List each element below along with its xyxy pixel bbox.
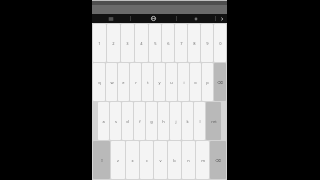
button[interactable]: j	[170, 102, 181, 140]
staticText: n	[187, 158, 190, 163]
button[interactable]: 8	[188, 24, 200, 62]
button[interactable]: Menu	[92, 14, 130, 23]
button[interactable]: z	[111, 141, 125, 179]
staticText: 5	[154, 41, 157, 46]
button[interactable]: a	[98, 102, 109, 140]
staticText: v	[159, 158, 162, 163]
button[interactable]: 3	[121, 24, 134, 62]
button[interactable]: t	[142, 63, 153, 101]
button[interactable]: k	[182, 102, 193, 140]
staticText: ret	[211, 119, 217, 124]
button[interactable]: h	[158, 102, 169, 140]
staticText: ⇧	[100, 158, 104, 163]
staticText: q	[98, 80, 101, 85]
staticText: u	[170, 80, 173, 85]
staticText: i	[183, 80, 185, 85]
staticText: l	[199, 119, 201, 124]
button[interactable]: 9	[201, 24, 213, 62]
staticText: r	[135, 80, 137, 85]
staticText: 6	[167, 41, 170, 46]
staticText: z	[117, 158, 119, 163]
button[interactable]: ⌫	[214, 63, 226, 101]
staticText: o	[194, 80, 197, 85]
staticText: d	[126, 119, 129, 124]
staticText: 8	[193, 41, 196, 46]
staticText: g	[150, 119, 153, 124]
button[interactable]: b	[168, 141, 181, 179]
staticText: h	[162, 119, 165, 124]
staticText: ⌫	[215, 158, 221, 163]
button[interactable]: o	[190, 63, 201, 101]
button[interactable]: 5	[149, 24, 161, 62]
staticText: f	[139, 119, 141, 124]
button[interactable]: w	[106, 63, 117, 101]
button[interactable]: Settings	[177, 14, 215, 23]
staticText: t	[147, 80, 149, 85]
staticText: j	[175, 119, 177, 124]
button[interactable]: x	[126, 141, 139, 179]
button[interactable]: y	[154, 63, 165, 101]
button[interactable]: 1	[93, 24, 106, 62]
button[interactable]: ret	[206, 102, 221, 140]
button[interactable]: Voice input	[131, 14, 176, 23]
button[interactable]: 4	[135, 24, 148, 62]
staticText: a	[102, 119, 105, 124]
staticText: x	[131, 158, 134, 163]
button[interactable]: m	[196, 141, 209, 179]
button[interactable]: c	[140, 141, 153, 179]
button[interactable]: n	[182, 141, 195, 179]
button[interactable]: 7	[175, 24, 187, 62]
button[interactable]: q	[93, 63, 105, 101]
staticText: p	[206, 80, 209, 85]
staticText: 3	[126, 41, 129, 46]
button[interactable]: s	[110, 102, 121, 140]
staticText: 9	[206, 41, 209, 46]
staticText: 2	[112, 41, 115, 46]
button[interactable]: f	[134, 102, 145, 140]
button[interactable]: g	[146, 102, 157, 140]
button[interactable]: p	[202, 63, 213, 101]
staticText: m	[201, 158, 205, 163]
button[interactable]: 6	[162, 24, 174, 62]
staticText: b	[173, 158, 176, 163]
button[interactable]: Next	[216, 14, 227, 23]
button[interactable]: 0	[214, 24, 226, 62]
staticText: y	[158, 80, 161, 85]
staticText: 0	[219, 41, 222, 46]
staticText: w	[110, 80, 114, 85]
staticText: c	[146, 158, 148, 163]
button[interactable]: ⌫	[210, 141, 226, 179]
button[interactable]: u	[166, 63, 177, 101]
staticText: 4	[140, 41, 143, 46]
button[interactable]: d	[122, 102, 133, 140]
button[interactable]: r	[130, 63, 141, 101]
staticText: e	[122, 80, 125, 85]
button[interactable]: v	[154, 141, 167, 179]
button[interactable]: 2	[107, 24, 120, 62]
button[interactable]: e	[118, 63, 129, 101]
staticText: 1	[98, 41, 101, 46]
staticText: s	[115, 119, 117, 124]
staticText: 7	[180, 41, 183, 46]
staticText: k	[186, 119, 189, 124]
staticText: ⌫	[217, 80, 223, 85]
